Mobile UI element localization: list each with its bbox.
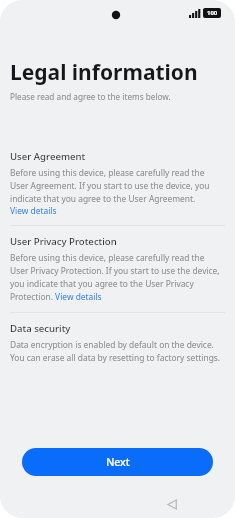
staticText: Before using this device, please careful… <box>10 252 225 303</box>
button[interactable]: Next <box>22 448 213 476</box>
button[interactable]: View details <box>10 205 57 216</box>
staticText: 100 <box>207 9 218 17</box>
staticText: User Agreement <box>10 150 86 163</box>
staticText: Data security <box>10 322 71 335</box>
staticText: Legal information <box>10 58 198 87</box>
staticText: User Privacy Protection <box>10 235 117 248</box>
staticText: View details <box>10 205 57 216</box>
staticText: Data encryption is enabled by default on… <box>10 339 225 364</box>
staticText: Before using this device, please careful… <box>10 167 225 205</box>
button[interactable]: Before using this device, please careful… <box>0 252 235 303</box>
staticText: Next <box>106 455 130 469</box>
button[interactable]: Back <box>164 496 180 512</box>
staticText: Please read and agree to the items below… <box>10 91 171 102</box>
